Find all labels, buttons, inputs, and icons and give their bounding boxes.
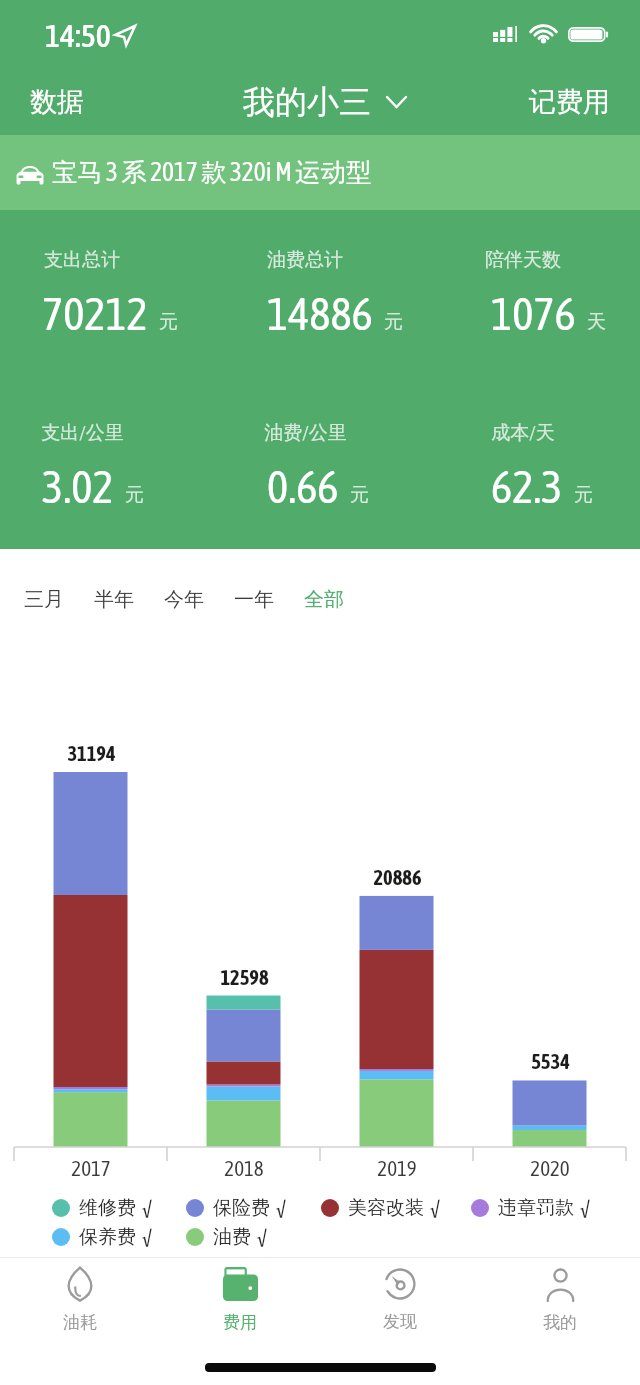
button[interactable]: 保养费 xyxy=(52,1222,152,1252)
staticText: 全部 xyxy=(304,587,344,612)
staticText: 5534 xyxy=(531,1050,570,1073)
staticText: 半年 xyxy=(94,587,134,612)
button[interactable]: 我的小三 xyxy=(237,76,412,128)
staticText: 今年 xyxy=(164,587,204,612)
staticText: 保养费 xyxy=(79,1225,136,1249)
other: Discover xyxy=(384,1268,416,1300)
button[interactable]: 美容改装 xyxy=(321,1193,440,1223)
staticText: 支出总计 xyxy=(44,248,120,272)
staticText: 我的 xyxy=(543,1312,577,1333)
staticText: 0.66 xyxy=(267,461,339,513)
staticText: 美容改装 xyxy=(348,1196,424,1220)
staticText: 三月 xyxy=(24,587,64,612)
other: Profile xyxy=(546,1268,575,1301)
staticText: 油费/公里 xyxy=(264,421,347,445)
staticText: 我的小三 xyxy=(243,82,371,122)
button[interactable]: Expense xyxy=(160,1262,320,1338)
staticText: 支出/公里 xyxy=(41,421,124,445)
button[interactable]: 记费用 xyxy=(513,75,640,129)
staticText: 元 xyxy=(384,310,403,334)
staticText: 2020 xyxy=(530,1156,570,1180)
staticText: 保险费 xyxy=(213,1196,270,1220)
staticText: 维修费 xyxy=(79,1196,136,1220)
button[interactable]: 维修费 xyxy=(52,1193,152,1223)
staticText: 油耗 xyxy=(63,1312,97,1333)
staticText: 成本/天 xyxy=(491,421,555,445)
staticText: √ xyxy=(276,1197,286,1219)
staticText: 14886 xyxy=(267,288,373,340)
staticText: 费用 xyxy=(223,1312,257,1333)
staticText: √ xyxy=(142,1226,152,1248)
button[interactable]: 违章罚款 xyxy=(471,1193,590,1223)
button[interactable]: 保险费 xyxy=(186,1193,286,1223)
other: Location xyxy=(115,26,135,45)
staticText: 2019 xyxy=(377,1156,417,1180)
staticText: √ xyxy=(257,1226,267,1248)
staticText: √ xyxy=(580,1197,590,1219)
staticText: 2017 xyxy=(71,1156,111,1180)
staticText: 陪伴天数 xyxy=(485,248,561,272)
button[interactable]: 油费 xyxy=(186,1222,267,1252)
staticText: 31194 xyxy=(67,742,116,765)
staticText: 14:50 xyxy=(45,17,111,54)
staticText: 1076 xyxy=(491,288,576,340)
staticText: 油费 xyxy=(213,1225,251,1249)
button[interactable]: Fuel xyxy=(0,1262,160,1338)
button[interactable]: 全部 xyxy=(288,573,358,626)
staticText: 一年 xyxy=(234,587,274,612)
staticText: 记费用 xyxy=(529,85,610,119)
staticText: 油费总计 xyxy=(267,248,343,272)
staticText: 20886 xyxy=(373,866,422,889)
staticText: 2018 xyxy=(224,1156,264,1180)
button[interactable]: 宝马 3 系 2017 款 320i M 运动型 xyxy=(0,135,640,210)
staticText: 违章罚款 xyxy=(498,1196,574,1220)
button[interactable]: Discover xyxy=(320,1262,480,1338)
staticText: 数据 xyxy=(30,85,84,119)
staticText: 元 xyxy=(125,483,144,507)
staticText: 元 xyxy=(574,483,593,507)
staticText: √ xyxy=(142,1197,152,1219)
staticText: 元 xyxy=(350,483,369,507)
staticText: 12598 xyxy=(220,966,269,989)
staticText: 62.3 xyxy=(491,461,563,513)
staticText: 70212 xyxy=(42,288,148,340)
staticText: 发现 xyxy=(383,1311,417,1332)
staticText: 宝马 3 系 2017 款 320i M 运动型 xyxy=(52,157,372,189)
button[interactable]: 今年 xyxy=(148,573,218,626)
button[interactable]: 三月 xyxy=(8,573,78,626)
staticText: 元 xyxy=(159,310,178,334)
staticText: 3.02 xyxy=(42,461,114,513)
button[interactable]: 数据 xyxy=(0,75,100,129)
button[interactable]: 一年 xyxy=(218,573,288,626)
button[interactable]: 半年 xyxy=(78,573,148,626)
staticText: 天 xyxy=(587,310,606,334)
other: Expense xyxy=(223,1267,258,1301)
button[interactable]: Profile xyxy=(480,1262,640,1338)
staticText: √ xyxy=(430,1197,440,1219)
other: Fuel xyxy=(66,1267,94,1301)
